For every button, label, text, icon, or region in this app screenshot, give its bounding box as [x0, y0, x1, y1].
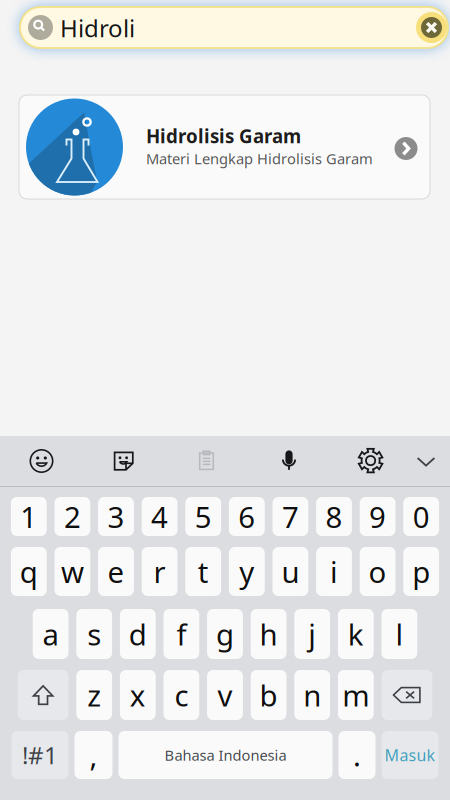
button[interactable]: t	[185, 547, 221, 596]
button[interactable]: Bahasa Indonesia	[118, 731, 332, 779]
button[interactable]: w	[54, 547, 90, 596]
staticText: f	[176, 614, 186, 653]
button[interactable]: !#1	[11, 731, 68, 779]
staticText: r	[154, 552, 166, 591]
button[interactable]: o	[360, 547, 395, 596]
button[interactable]: Keyboard settings	[346, 436, 396, 486]
button[interactable]: .	[338, 731, 375, 779]
staticText: a	[43, 614, 59, 653]
button[interactable]: x	[120, 670, 156, 720]
staticText: 2	[64, 497, 81, 536]
button[interactable]: z	[76, 670, 112, 720]
staticText: 1	[20, 497, 37, 536]
button[interactable]: u	[272, 547, 308, 596]
button[interactable]: l	[381, 609, 417, 659]
button[interactable]: m	[338, 670, 374, 720]
staticText: x	[130, 675, 146, 714]
button[interactable]: k	[338, 609, 374, 659]
staticText: .	[353, 735, 361, 774]
button[interactable]: 6	[229, 497, 265, 536]
button[interactable]: e	[98, 547, 134, 596]
staticText: d	[129, 614, 147, 653]
button[interactable]: h	[251, 609, 286, 659]
staticText: l	[395, 614, 403, 653]
button[interactable]: Voice input	[264, 436, 314, 486]
button[interactable]: p	[403, 547, 439, 596]
staticText: t	[198, 552, 209, 591]
staticText: h	[260, 614, 278, 653]
staticText: c	[174, 675, 188, 714]
staticText: b	[260, 675, 278, 714]
staticText: Hidrolisis Garam	[146, 124, 301, 148]
button[interactable]: 9	[360, 497, 395, 536]
button[interactable]: Backspace	[381, 670, 432, 720]
staticText: q	[20, 552, 38, 591]
staticText: v	[217, 675, 232, 714]
staticText: 4	[151, 497, 168, 536]
staticText: 7	[282, 497, 299, 536]
staticText: g	[216, 614, 234, 653]
button[interactable]: n	[294, 670, 330, 720]
button[interactable]: 2	[54, 497, 90, 536]
staticText: 5	[195, 497, 212, 536]
button[interactable]: 3	[98, 497, 134, 536]
button[interactable]: 1	[11, 497, 47, 536]
button[interactable]: Emoji	[16, 436, 66, 486]
staticText: n	[303, 675, 321, 714]
button[interactable]: j	[294, 609, 330, 659]
staticText: y	[239, 552, 254, 591]
button[interactable]: v	[207, 670, 243, 720]
button[interactable]: ,	[74, 731, 112, 779]
staticText: u	[281, 552, 299, 591]
staticText: s	[87, 614, 101, 653]
button[interactable]: 0	[403, 497, 439, 536]
button[interactable]: c	[163, 670, 199, 720]
staticText: p	[412, 552, 430, 591]
staticText: j	[308, 614, 316, 653]
button[interactable]: Shift	[18, 670, 68, 720]
button[interactable]: Clipboard	[181, 436, 231, 486]
button[interactable]: 4	[142, 497, 177, 536]
staticText: !#1	[22, 739, 58, 771]
button[interactable]: a	[33, 609, 68, 659]
button[interactable]: i	[316, 547, 352, 596]
button[interactable]: Masuk	[381, 731, 438, 779]
staticText: w	[61, 552, 84, 591]
button[interactable]: Stickers	[99, 436, 149, 486]
button[interactable]: 7	[272, 497, 308, 536]
staticText: 6	[238, 497, 255, 536]
staticText: Masuk	[384, 744, 435, 766]
staticText: o	[369, 552, 387, 591]
staticText: 0	[413, 497, 430, 536]
staticText: i	[330, 552, 338, 591]
button[interactable]: Clear search text	[416, 12, 447, 43]
button[interactable]: b	[251, 670, 286, 720]
staticText: 9	[369, 497, 386, 536]
button[interactable]: Hidrolisis Garam	[19, 95, 430, 199]
staticText: Bahasa Indonesia	[164, 745, 286, 765]
button[interactable]: q	[11, 547, 47, 596]
button[interactable]: d	[120, 609, 156, 659]
staticText: Hidroli	[60, 12, 135, 44]
staticText: ,	[89, 735, 97, 774]
staticText: k	[348, 614, 364, 653]
staticText: Materi Lengkap Hidrolisis Garam	[146, 149, 373, 168]
staticText: m	[342, 675, 369, 714]
button[interactable]: 5	[185, 497, 221, 536]
staticText: 3	[107, 497, 124, 536]
staticText: z	[87, 675, 101, 714]
button[interactable]: g	[207, 609, 243, 659]
button[interactable]: s	[76, 609, 112, 659]
staticText: e	[107, 552, 124, 591]
button[interactable]: r	[142, 547, 177, 596]
button[interactable]: y	[229, 547, 265, 596]
button[interactable]: 8	[316, 497, 352, 536]
button[interactable]: f	[163, 609, 199, 659]
button[interactable]: Hide keyboard	[401, 436, 450, 486]
staticText: 8	[325, 497, 342, 536]
